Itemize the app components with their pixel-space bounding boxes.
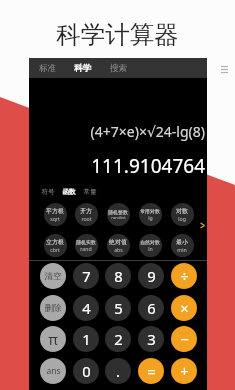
staticText: ans — [46, 365, 61, 377]
button[interactable]: ÷ — [171, 263, 197, 289]
button[interactable]: 9 — [138, 263, 164, 289]
staticText: − — [180, 329, 189, 349]
button[interactable]: Menu — [218, 62, 231, 75]
button[interactable]: + — [171, 358, 197, 384]
staticText: 常用对数 — [140, 208, 160, 214]
staticText: (4+7×e)×√24-lg(8) — [90, 122, 205, 141]
staticText: 111.9104764 — [91, 153, 205, 179]
staticText: 平方根 — [46, 207, 64, 215]
staticText: 3 — [147, 329, 156, 349]
button[interactable]: 随机实数 — [69, 234, 103, 257]
button[interactable]: 函数 — [62, 186, 76, 198]
staticText: 随机整数 — [108, 209, 128, 215]
button[interactable]: 7 — [73, 263, 99, 289]
button[interactable]: = — [138, 358, 164, 384]
staticText: × — [180, 298, 189, 318]
staticText: 7 — [82, 266, 91, 286]
staticText: cbrt — [50, 246, 60, 253]
staticText: ÷ — [180, 266, 189, 286]
button[interactable]: 6 — [138, 295, 164, 321]
staticText: 科学 — [74, 63, 91, 74]
staticText: sqrt — [50, 215, 60, 222]
button[interactable]: 对数 — [165, 203, 199, 226]
button[interactable]: 立方根 — [38, 234, 72, 257]
button[interactable]: 科学 — [68, 58, 96, 78]
staticText: 清空 — [44, 271, 62, 282]
staticText: π — [48, 329, 58, 349]
staticText: rand — [80, 245, 92, 252]
button[interactable]: 0 — [73, 358, 99, 384]
staticText: 常量 — [83, 188, 97, 196]
button[interactable]: 自然对数 — [133, 234, 167, 257]
staticText: lg — [148, 214, 153, 221]
button[interactable]: 绝对值 — [101, 234, 135, 257]
button[interactable]: 随机整数 — [101, 203, 135, 226]
button[interactable]: 5 — [105, 295, 131, 321]
staticText: 开方 — [80, 207, 92, 215]
button[interactable]: π — [40, 326, 66, 352]
staticText: randint — [111, 215, 126, 221]
staticText: 符号 — [41, 188, 55, 196]
staticText: log — [178, 215, 186, 222]
button[interactable]: 平方根 — [38, 203, 72, 226]
button[interactable]: 常量 — [83, 186, 97, 198]
staticText: = — [147, 361, 156, 381]
staticText: min — [177, 246, 187, 253]
button[interactable]: 8 — [105, 263, 131, 289]
button[interactable]: 标准 — [33, 58, 61, 78]
button[interactable]: 清空 — [40, 263, 66, 289]
button[interactable]: 2 — [105, 326, 131, 352]
staticText: ln — [148, 245, 153, 252]
staticText: root — [81, 215, 92, 222]
staticText: abs — [114, 246, 123, 253]
staticText: . — [116, 361, 120, 381]
staticText: 6 — [147, 298, 156, 318]
button[interactable]: 3 — [138, 326, 164, 352]
staticText: 随机实数 — [76, 239, 96, 245]
staticText: 科学计算器 — [56, 19, 179, 50]
staticText: 绝对值 — [109, 238, 127, 246]
button[interactable]: 最小 — [165, 234, 199, 257]
staticText: 删除 — [44, 303, 62, 314]
button[interactable]: 搜索 — [104, 58, 132, 78]
staticText: 4 — [82, 298, 91, 318]
staticText: 自然对数 — [140, 239, 160, 245]
staticText: 对数 — [176, 207, 188, 215]
button[interactable]: 常用对数 — [133, 203, 167, 226]
button[interactable]: × — [171, 295, 197, 321]
button[interactable]: 开方 — [69, 203, 103, 226]
staticText: 函数 — [62, 188, 76, 196]
button[interactable]: 符号 — [41, 186, 55, 198]
button[interactable]: . — [105, 358, 131, 384]
staticText: 搜索 — [110, 63, 127, 74]
staticText: 0 — [82, 361, 91, 381]
staticText: 8 — [114, 266, 123, 286]
staticText: 2 — [114, 329, 123, 349]
staticText: 1 — [82, 329, 91, 349]
button[interactable]: ans — [40, 358, 66, 384]
staticText: 9 — [147, 266, 156, 286]
staticText: 标准 — [39, 63, 56, 74]
button[interactable]: 1 — [73, 326, 99, 352]
staticText: 5 — [114, 298, 123, 318]
button[interactable]: − — [171, 326, 197, 352]
button[interactable]: 删除 — [40, 295, 66, 321]
staticText: 立方根 — [46, 238, 64, 246]
button[interactable]: More functions — [198, 221, 207, 230]
staticText: + — [180, 361, 189, 381]
staticText: 最小 — [176, 238, 188, 246]
button[interactable]: 4 — [73, 295, 99, 321]
